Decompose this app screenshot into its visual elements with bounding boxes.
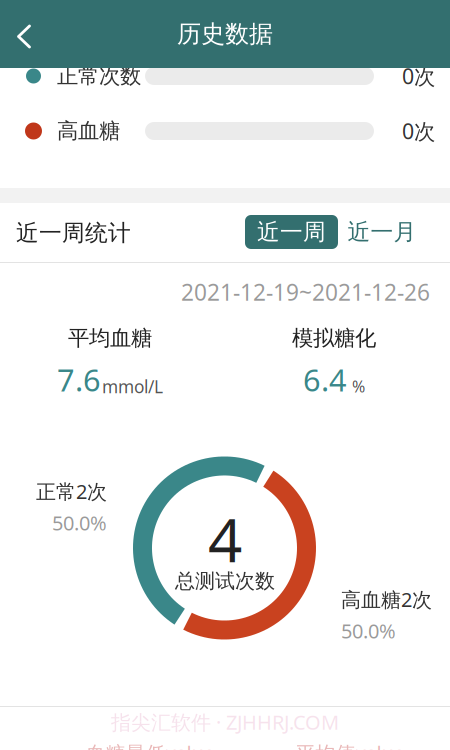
staticText: 4 bbox=[208, 499, 242, 579]
button[interactable]: 正常次数 bbox=[0, 62, 450, 90]
button[interactable]: 返回 bbox=[0, 0, 48, 68]
staticText: 平均值value bbox=[295, 740, 404, 750]
staticText: 正常次数 bbox=[57, 63, 141, 89]
staticText: 近一周 bbox=[257, 218, 326, 246]
button[interactable]: 高血糖 bbox=[0, 117, 450, 145]
staticText: 正常2次 bbox=[36, 478, 107, 505]
staticText: 高血糖 bbox=[57, 118, 120, 144]
staticText: 指尖汇软件 · ZJHHRJ.COM bbox=[111, 709, 339, 735]
staticText: 7.6 bbox=[57, 359, 101, 400]
staticText: 高血糖2次 bbox=[341, 586, 432, 613]
staticText: 历史数据 bbox=[177, 19, 273, 49]
button[interactable]: 近一周 bbox=[245, 215, 338, 249]
staticText: % bbox=[352, 376, 365, 397]
staticText: 总测试次数 bbox=[175, 569, 275, 593]
staticText: 50.0% bbox=[341, 618, 396, 644]
staticText: 近一月 bbox=[347, 218, 416, 246]
staticText: 6.4 bbox=[303, 359, 347, 400]
staticText: 2021-12-19~2021-12-26 bbox=[181, 277, 430, 307]
staticText: 模拟糖化 bbox=[292, 325, 376, 351]
staticText: 0次 bbox=[402, 117, 435, 145]
staticText: 血糖最低value bbox=[85, 740, 214, 750]
staticText: 近一周统计 bbox=[16, 219, 131, 247]
staticText: 50.0% bbox=[52, 510, 107, 536]
button[interactable]: 近一月 bbox=[342, 215, 422, 249]
staticText: mmol/L bbox=[102, 375, 163, 398]
staticText: 平均血糖 bbox=[68, 325, 152, 351]
staticText: 0次 bbox=[402, 62, 435, 90]
